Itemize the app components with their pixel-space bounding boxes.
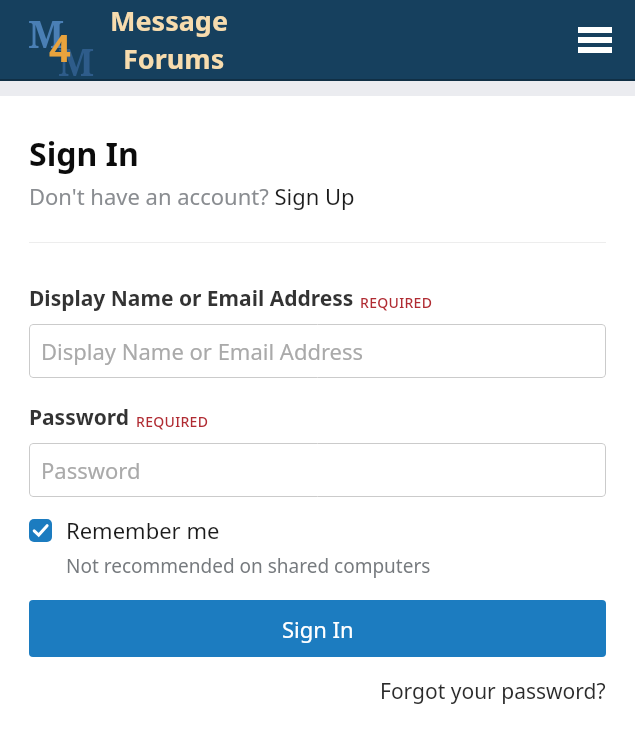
- staticText: Remember me: [66, 515, 220, 545]
- other: Remember me checkbox, checked: [29, 519, 52, 542]
- staticText: Sign In: [282, 614, 354, 644]
- staticText: M: [58, 35, 95, 87]
- button[interactable]: Open menu: [573, 18, 617, 62]
- staticText: Forums: [123, 40, 225, 77]
- staticText: Message: [110, 2, 229, 39]
- staticText: 4: [49, 21, 71, 73]
- button[interactable]: Message Forums home: [28, 2, 229, 77]
- button[interactable]: Don't have an account? Sign Up: [29, 181, 355, 211]
- staticText: Forgot your password?: [380, 677, 606, 706]
- staticText: Password: [29, 403, 130, 432]
- button[interactable]: Sign In: [29, 132, 139, 176]
- staticText: REQUIRED: [136, 412, 209, 431]
- staticText: M: [28, 7, 65, 59]
- staticText: Don't have an account? Sign Up: [29, 181, 355, 211]
- button[interactable]: Password: [29, 443, 606, 497]
- staticText: Display Name or Email Address: [29, 284, 354, 313]
- staticText: Not recommended on shared computers: [66, 553, 431, 579]
- button[interactable]: Forgot your password?: [380, 677, 606, 706]
- staticText: Password: [41, 455, 141, 485]
- button[interactable]: Display Name or Email Address: [29, 324, 606, 378]
- staticText: Sign In: [29, 132, 139, 176]
- staticText: REQUIRED: [360, 293, 433, 312]
- staticText: Display Name or Email Address: [41, 336, 364, 366]
- button[interactable]: Sign In: [29, 600, 606, 657]
- button[interactable]: Remember me checkbox, checked: [29, 515, 220, 545]
